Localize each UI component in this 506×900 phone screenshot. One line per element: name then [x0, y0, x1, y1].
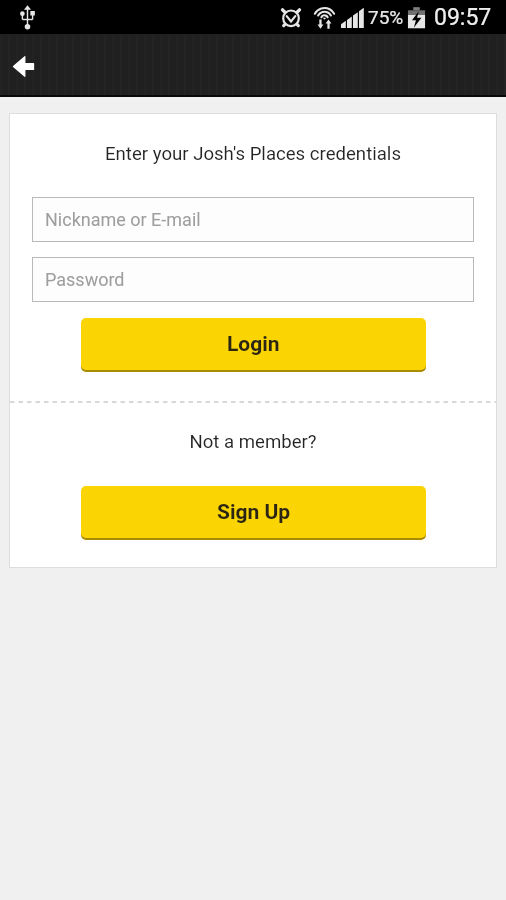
staticText: Password [45, 269, 125, 290]
staticText: 09:57 [434, 4, 492, 31]
staticText: Login [227, 332, 280, 357]
button[interactable]: Back [0, 43, 46, 89]
staticText: Sign Up [217, 500, 291, 525]
staticText: 75% [368, 6, 404, 28]
staticText: Enter your Josh's Places credentials [10, 143, 496, 165]
staticText: Not a member? [10, 431, 496, 453]
button[interactable]: Login [81, 318, 426, 370]
button[interactable]: Sign Up [81, 486, 426, 538]
button[interactable]: Nickname or E-mail [33, 198, 473, 241]
staticText: Nickname or E-mail [45, 209, 201, 230]
button[interactable]: Password [33, 258, 473, 301]
